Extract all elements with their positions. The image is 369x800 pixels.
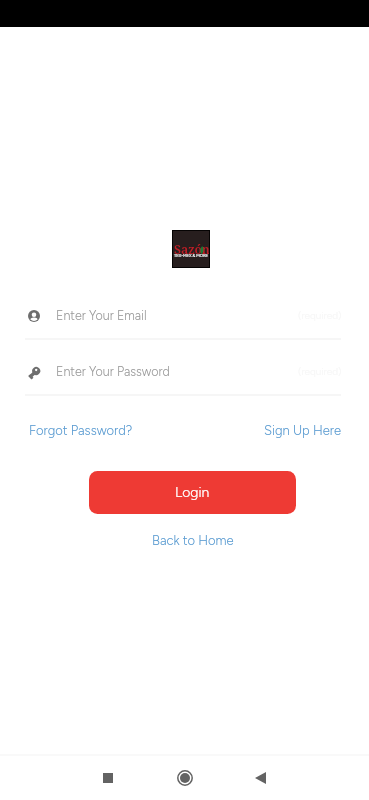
staticText: Enter Your Email — [56, 308, 147, 323]
staticText: Sign Up Here — [264, 423, 342, 439]
staticText: Sazón — [174, 241, 209, 257]
staticText: TEX-MEX & MORE — [174, 253, 209, 258]
button[interactable]: Sign Up Here — [264, 423, 342, 439]
staticText: Forgot Password? — [29, 423, 133, 439]
button[interactable]: Login — [89, 471, 296, 514]
staticText: Enter Your Password — [56, 364, 170, 379]
button[interactable]: Back — [240, 758, 280, 798]
button[interactable]: Recent apps — [88, 757, 128, 797]
staticText: Login — [175, 484, 210, 501]
button[interactable]: Forgot Password? — [29, 423, 133, 439]
button[interactable]: Home — [165, 758, 205, 798]
button[interactable]: Back to Home — [152, 533, 234, 549]
staticText: Back to Home — [152, 533, 234, 549]
